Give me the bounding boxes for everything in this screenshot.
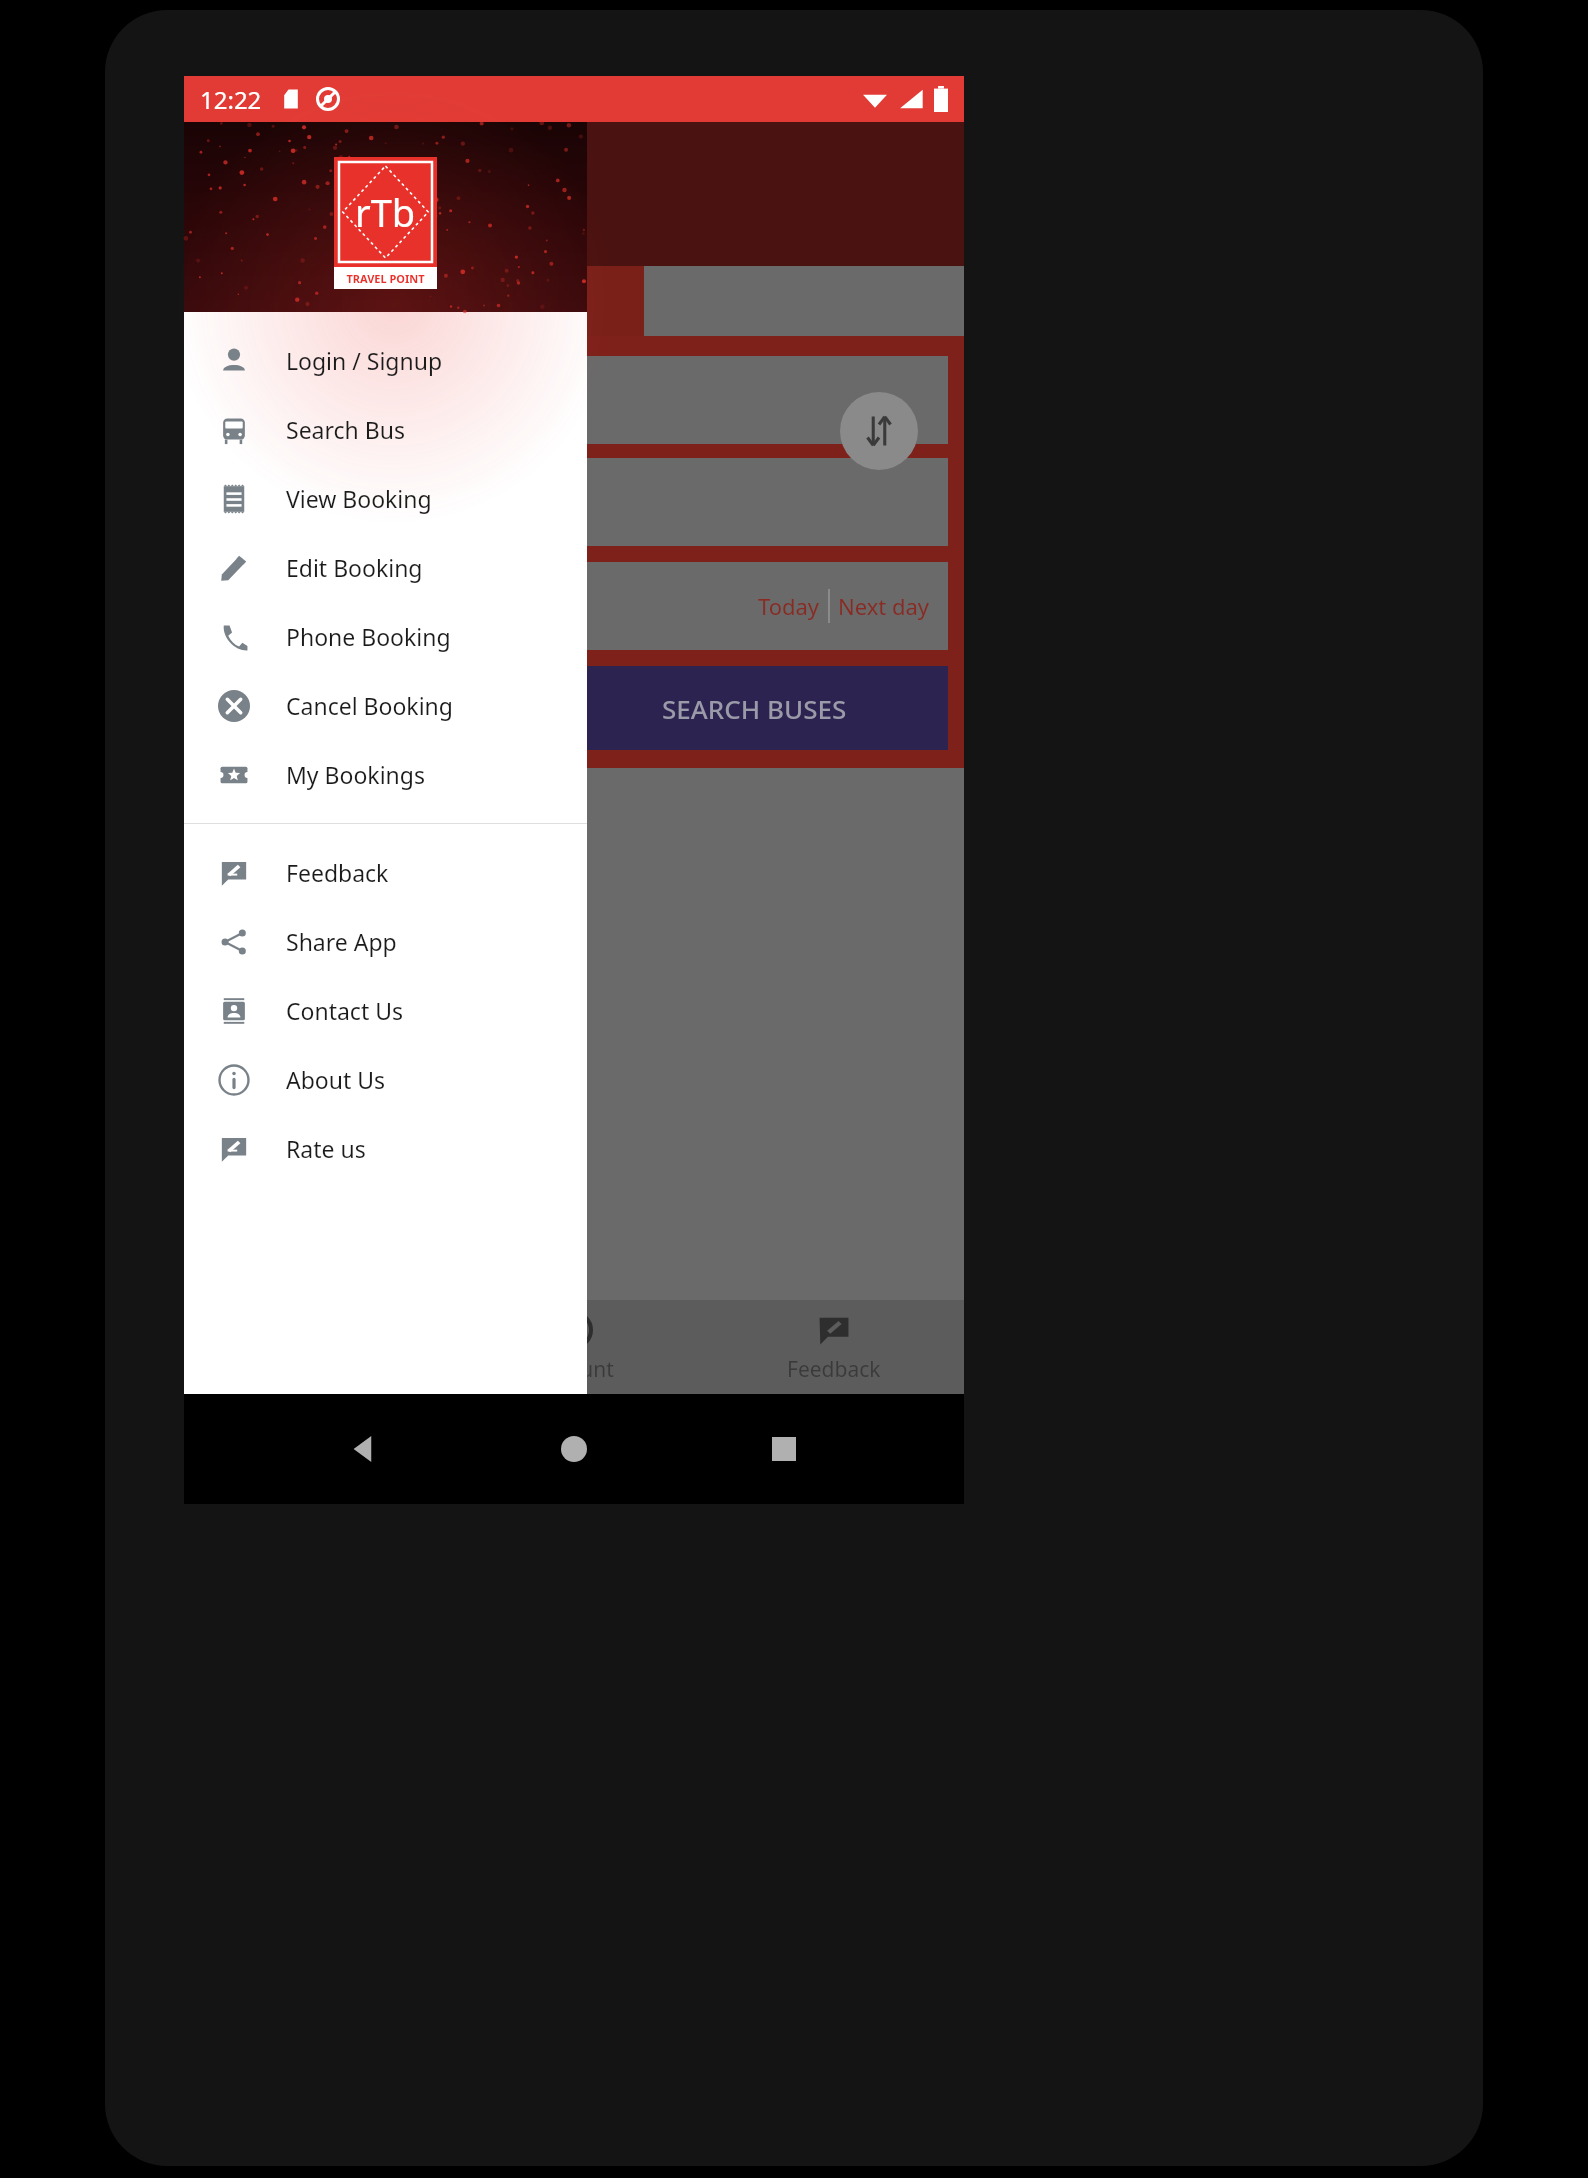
staticText: Share App — [286, 926, 397, 957]
button[interactable]: View Booking — [184, 464, 587, 533]
staticText: rTb — [355, 186, 416, 238]
button[interactable]: Account — [444, 1300, 704, 1394]
button[interactable]: About Us — [184, 1045, 587, 1114]
staticText: Phone Booking — [286, 621, 451, 652]
button[interactable]: Search Bus — [184, 395, 587, 464]
button[interactable]: Recent apps — [754, 1419, 814, 1479]
button[interactable]: Next day — [830, 591, 938, 621]
staticText: Login / Signup — [286, 345, 443, 376]
staticText: View Booking — [286, 483, 432, 514]
staticText: Rate us — [286, 1133, 366, 1164]
staticText: Feedback — [787, 1355, 881, 1384]
staticText: Edit Booking — [286, 552, 423, 583]
button[interactable]: Back — [334, 1419, 394, 1479]
button[interactable]: Contact Us — [184, 976, 587, 1045]
button[interactable]: Login / Signup — [184, 326, 587, 395]
staticText: Search Bus — [286, 414, 405, 445]
button[interactable]: My Bookings — [184, 740, 587, 809]
staticText: Feedback — [286, 857, 389, 888]
staticText: Today — [758, 591, 820, 621]
button[interactable]: Share App — [184, 907, 587, 976]
button[interactable]: Today — [750, 591, 828, 621]
staticText: Contact Us — [286, 995, 404, 1026]
button[interactable]: Phone Booking — [184, 602, 587, 671]
staticText: SEARCH BUSES — [662, 691, 847, 726]
button[interactable]: SEARCH BUSES — [560, 666, 948, 750]
staticText: 12:22 — [200, 83, 262, 116]
staticText: My Bookings — [286, 759, 425, 790]
button[interactable]: Rate us — [184, 1114, 587, 1183]
button[interactable]: Edit Booking — [184, 533, 587, 602]
staticText: Cancel Booking — [286, 690, 453, 721]
staticText: Account — [534, 1355, 614, 1384]
button[interactable]: Feedback — [704, 1300, 964, 1394]
staticText: TRAVEL POINT — [346, 271, 425, 286]
button[interactable]: Swap source and destination — [840, 392, 918, 470]
staticText: About Us — [286, 1064, 386, 1095]
button[interactable]: Feedback — [184, 838, 587, 907]
button[interactable]: Home — [544, 1419, 604, 1479]
staticText: Next day — [838, 591, 930, 621]
button[interactable]: Cancel Booking — [184, 671, 587, 740]
